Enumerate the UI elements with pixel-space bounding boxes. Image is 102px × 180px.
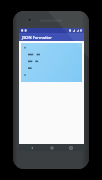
button[interactable]: Back <box>26 144 38 151</box>
button[interactable] <box>21 43 82 82</box>
button[interactable]: Home <box>46 144 58 151</box>
button[interactable]: Recent apps <box>65 144 77 151</box>
staticText: JSON Formatter <box>22 35 53 40</box>
button[interactable]: JSON Formatter <box>19 33 84 41</box>
